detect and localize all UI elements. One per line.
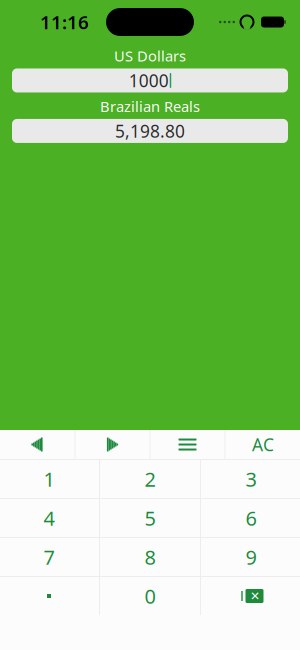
staticText: 4 [43, 505, 54, 531]
staticText: 7 [43, 544, 54, 570]
staticText: 5,198.80 [115, 119, 185, 142]
staticText: 8 [144, 544, 155, 570]
button[interactable]: Decimal point [0, 577, 99, 615]
staticText: 9 [245, 544, 256, 570]
button[interactable]: 0 [100, 577, 200, 615]
button[interactable]: 7 [0, 538, 99, 576]
staticText: Brazilian Reals [100, 96, 200, 116]
button[interactable]: AC [225, 430, 300, 459]
staticText: 0 [144, 583, 155, 609]
button[interactable]: 1 [0, 460, 99, 498]
staticText: 3 [245, 466, 256, 492]
button[interactable]: 6 [201, 499, 300, 537]
staticText: 5 [144, 505, 155, 531]
staticText: 1000 [129, 69, 169, 92]
button[interactable]: Move cursor right [75, 430, 149, 459]
button[interactable]: Move cursor left [0, 430, 74, 459]
staticText: 1 [43, 466, 54, 492]
staticText: ✕ [250, 589, 260, 603]
button[interactable]: 2 [100, 460, 200, 498]
staticText: 2 [144, 466, 155, 492]
button[interactable]: 8 [100, 538, 200, 576]
button[interactable]: Delete [201, 577, 300, 615]
button[interactable]: 5 [100, 499, 200, 537]
button[interactable]: 3 [201, 460, 300, 498]
staticText: US Dollars [114, 46, 186, 65]
staticText: AC [252, 433, 274, 456]
button[interactable]: 9 [201, 538, 300, 576]
staticText: 6 [245, 505, 256, 531]
button[interactable]: 4 [0, 499, 99, 537]
staticText: 11:16 [40, 10, 89, 34]
button[interactable]: Menu [150, 430, 224, 459]
